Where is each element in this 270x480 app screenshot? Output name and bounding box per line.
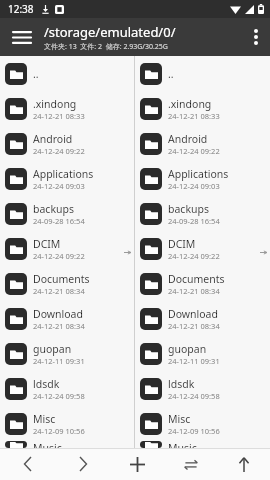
button[interactable]: Documents [0, 266, 134, 301]
button[interactable]: .. [135, 56, 270, 91]
button[interactable]: backups [0, 196, 134, 231]
staticText: .xindong [33, 97, 77, 111]
staticText: 24-12-09 10:56 [168, 426, 220, 436]
staticText: /storage/emulated/0/ [44, 23, 176, 41]
button[interactable]: Up [218, 448, 270, 480]
staticText: Applications [33, 167, 94, 181]
button[interactable]: New [110, 448, 164, 480]
button[interactable]: backups [135, 196, 270, 231]
staticText: .. [33, 67, 39, 81]
staticText: Download [168, 307, 218, 321]
staticText: 24-12-21 08:34 [33, 321, 85, 331]
staticText: Music [168, 441, 197, 448]
button[interactable]: Android [0, 126, 134, 161]
staticText: Documents [33, 272, 90, 286]
button[interactable]: Download [0, 301, 134, 336]
staticText: Download [33, 307, 83, 321]
button[interactable]: Misc [0, 406, 134, 441]
staticText: 24-12-24 09:03 [33, 181, 85, 191]
staticText: 24-12-21 08:34 [33, 286, 85, 296]
button[interactable]: Documents [135, 266, 270, 301]
staticText: 24-09-28 16:54 [33, 216, 85, 226]
staticText: 24-12-21 08:34 [168, 321, 220, 331]
staticText: 24-12-24 09:22 [33, 146, 85, 156]
staticText: DCIM [168, 237, 196, 251]
button[interactable]: Music [0, 441, 134, 448]
button[interactable]: More options [242, 18, 270, 56]
staticText: DCIM [33, 237, 61, 251]
button[interactable]: Applications [0, 161, 134, 196]
staticText: Documents [168, 272, 225, 286]
staticText: 24-12-21 08:33 [168, 111, 220, 121]
staticText: backups [33, 202, 74, 216]
staticText: 24-12-24 09:58 [168, 391, 220, 401]
button[interactable]: Download [135, 301, 270, 336]
button[interactable]: Music [135, 441, 270, 448]
staticText: 文件夹: 13 文件: 2 储存: 2.93G/30.25G [44, 42, 168, 52]
button[interactable]: DCIM [135, 231, 270, 266]
staticText: 24-12-11 09:31 [168, 356, 220, 366]
staticText: 24-12-11 09:31 [33, 356, 85, 366]
staticText: Applications [168, 167, 229, 181]
staticText: ldsdk [168, 377, 195, 391]
button[interactable]: Transfer [164, 448, 218, 480]
button[interactable]: Misc [135, 406, 270, 441]
staticText: Misc [168, 412, 191, 426]
staticText: 24-12-21 08:33 [33, 111, 85, 121]
staticText: 24-12-09 10:56 [33, 426, 85, 436]
staticText: .. [168, 67, 174, 81]
staticText: guopan [168, 342, 207, 356]
button[interactable]: .xindong [135, 91, 270, 126]
staticText: 24-12-24 09:22 [168, 146, 220, 156]
staticText: Android [168, 132, 208, 146]
button[interactable]: Android [135, 126, 270, 161]
button[interactable]: Forward [55, 448, 110, 480]
button[interactable]: DCIM [0, 231, 134, 266]
button[interactable]: .. [0, 56, 134, 91]
staticText: 24-12-21 08:34 [168, 286, 220, 296]
staticText: 24-12-24 09:22 [33, 251, 85, 261]
button[interactable]: guopan [0, 336, 134, 371]
button[interactable]: guopan [135, 336, 270, 371]
button[interactable]: Back [0, 448, 55, 480]
staticText: 24-09-28 16:54 [168, 216, 220, 226]
staticText: Android [33, 132, 73, 146]
button[interactable]: Applications [135, 161, 270, 196]
staticText: 24-12-24 09:22 [168, 251, 220, 261]
staticText: Music [33, 441, 62, 448]
button[interactable]: .xindong [0, 91, 134, 126]
button[interactable]: ldsdk [0, 371, 134, 406]
staticText: guopan [33, 342, 72, 356]
staticText: 24-12-24 09:03 [168, 181, 220, 191]
staticText: .xindong [168, 97, 212, 111]
staticText: Misc [33, 412, 56, 426]
button[interactable]: Menu [0, 18, 44, 56]
staticText: 12:38 [8, 2, 34, 16]
staticText: ldsdk [33, 377, 60, 391]
staticText: backups [168, 202, 209, 216]
staticText: 24-12-24 09:58 [33, 391, 85, 401]
button[interactable]: ldsdk [135, 371, 270, 406]
